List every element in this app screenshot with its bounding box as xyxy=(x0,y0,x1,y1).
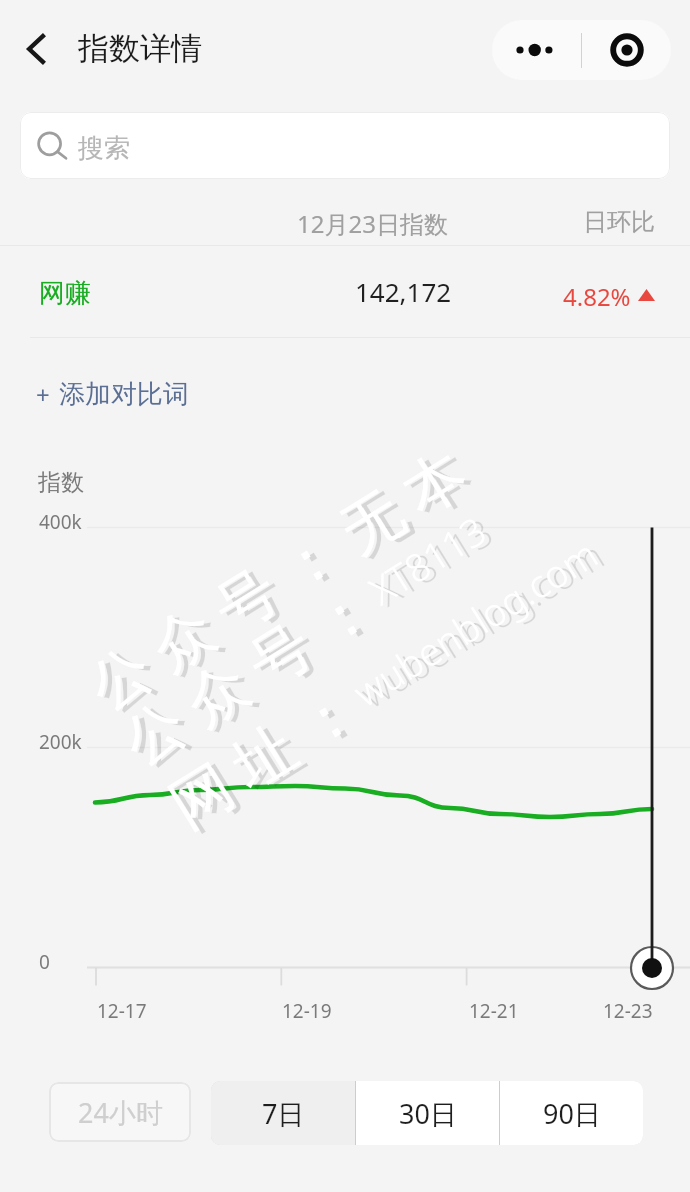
button[interactable]: 24小时 xyxy=(49,1082,191,1142)
staticText: 4.82% xyxy=(563,280,631,313)
button[interactable] xyxy=(20,112,670,179)
staticText: 12-19 xyxy=(282,998,332,1024)
staticText: 7日 xyxy=(262,1095,305,1132)
staticText: 日环比 xyxy=(583,207,655,237)
staticText: 0 xyxy=(39,949,50,975)
staticText: 200k xyxy=(39,729,82,755)
button[interactable]: More options xyxy=(492,20,581,80)
staticText: 142,172 xyxy=(355,274,452,309)
staticText: 12月23日指数 xyxy=(297,207,448,240)
button[interactable]: 30日 xyxy=(356,1081,499,1145)
staticText: 90日 xyxy=(543,1095,601,1132)
staticText: 添加对比词 xyxy=(59,378,189,411)
staticText: 搜索 xyxy=(78,132,130,165)
button[interactable]: Close mini program xyxy=(582,20,671,80)
button[interactable]: 90日 xyxy=(500,1081,643,1145)
staticText: 400k xyxy=(39,509,82,535)
button[interactable] xyxy=(0,246,690,337)
staticText: 指数详情 xyxy=(78,29,202,68)
staticText: + xyxy=(36,378,50,411)
staticText: 12-17 xyxy=(97,998,147,1024)
button[interactable]: + xyxy=(28,370,199,418)
staticText: 12-23 xyxy=(603,998,653,1024)
button[interactable]: 7日 xyxy=(211,1081,355,1145)
staticText: 指数 xyxy=(38,468,84,497)
staticText: 网赚 xyxy=(39,277,91,310)
staticText: 24小时 xyxy=(78,1094,163,1131)
staticText: 12-21 xyxy=(469,998,519,1024)
button[interactable]: Back xyxy=(5,17,69,81)
staticText: 30日 xyxy=(399,1095,457,1132)
